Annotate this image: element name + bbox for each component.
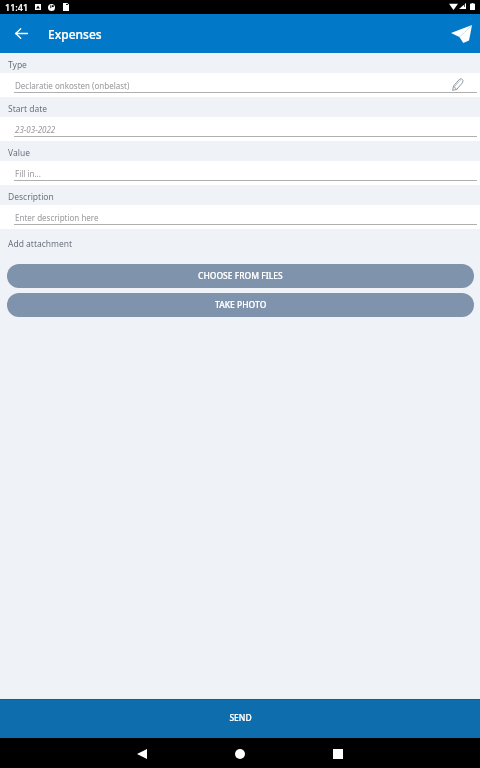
staticText: Value xyxy=(8,147,30,159)
button[interactable]: CHOOSE FROM FILES xyxy=(7,264,474,288)
button[interactable]: TAKE PHOTO xyxy=(7,293,474,317)
staticText: Declaratie onkosten (onbelast) xyxy=(15,80,130,91)
staticText: CHOOSE FROM FILES xyxy=(198,270,283,282)
button[interactable]: Enter description here xyxy=(0,205,480,229)
button[interactable]: Edit type xyxy=(451,77,465,91)
staticText: Expenses xyxy=(48,26,102,42)
button[interactable]: 23-03-2022 xyxy=(0,117,480,141)
staticText: Type xyxy=(8,59,27,71)
button[interactable]: Back xyxy=(127,739,157,768)
staticText: Enter description here xyxy=(15,212,99,223)
staticText: Description xyxy=(8,191,54,203)
button[interactable]: Back xyxy=(9,21,34,46)
button[interactable]: Recent apps xyxy=(323,739,353,768)
staticText: Add attachment xyxy=(8,238,73,250)
button[interactable]: SEND xyxy=(0,699,480,739)
staticText: SEND xyxy=(229,712,252,724)
staticText: 11:41 xyxy=(5,1,29,13)
button[interactable]: Fill in... xyxy=(0,161,480,185)
button[interactable]: Home xyxy=(225,739,255,768)
staticText: Start date xyxy=(8,103,48,115)
button[interactable]: Send xyxy=(448,21,474,47)
staticText: TAKE PHOTO xyxy=(215,299,267,311)
staticText: Fill in... xyxy=(15,168,41,179)
staticText: 23-03-2022 xyxy=(15,124,56,135)
button[interactable]: Declaratie onkosten (onbelast) xyxy=(0,73,480,97)
